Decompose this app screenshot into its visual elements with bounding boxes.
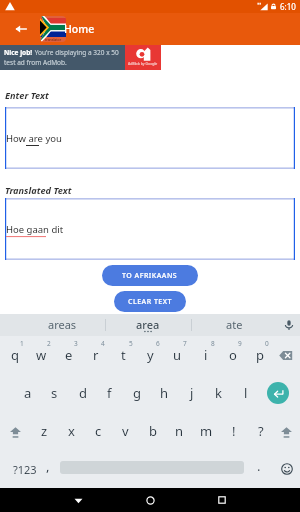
button[interactable]: w — [28, 336, 55, 374]
staticText: AdMob by Google — [128, 61, 158, 66]
staticText: q — [11, 346, 19, 364]
button[interactable]: n — [166, 412, 193, 450]
button[interactable]: CLEAR TEXT — [114, 291, 186, 312]
button[interactable]: k — [205, 374, 232, 412]
button[interactable]: ! — [220, 412, 247, 450]
button[interactable]: Enter — [267, 382, 289, 404]
staticText: e — [65, 346, 73, 364]
staticText: i — [204, 346, 208, 364]
staticText: CLEAR TEXT — [128, 297, 172, 307]
button[interactable]: e — [55, 336, 82, 374]
button[interactable]: Recent apps — [186, 488, 258, 512]
staticText: p — [256, 346, 264, 364]
button[interactable]: a — [14, 374, 41, 412]
staticText: 2 — [47, 339, 51, 348]
staticText: 7 — [183, 339, 187, 348]
button[interactable]: r — [82, 336, 109, 374]
button[interactable]: Home — [114, 488, 186, 512]
staticText: 3 — [74, 339, 78, 348]
button[interactable]: s — [41, 374, 68, 412]
staticText: j — [190, 384, 194, 402]
staticText: z — [41, 422, 48, 440]
staticText: h — [160, 384, 169, 402]
button[interactable]: m — [193, 412, 220, 450]
button[interactable]: Navigate up — [8, 13, 34, 45]
staticText: ! — [232, 422, 236, 440]
button[interactable]: y — [137, 336, 164, 374]
staticText: y — [147, 346, 154, 364]
staticText: 5 — [129, 339, 133, 348]
button[interactable]: v — [112, 412, 139, 450]
staticText: u — [173, 346, 182, 364]
staticText: 1 — [20, 339, 24, 348]
staticText: ? — [258, 422, 264, 440]
button[interactable]: Delete — [272, 336, 300, 374]
staticText: v — [122, 422, 129, 440]
button[interactable]: , — [36, 450, 60, 488]
staticText: 6:10 — [280, 1, 296, 12]
staticText: ?123 — [13, 462, 37, 477]
staticText: areas — [48, 317, 77, 332]
button[interactable]: u — [164, 336, 191, 374]
button[interactable]: Back — [42, 488, 114, 512]
staticText: area — [136, 317, 160, 332]
button[interactable]: l — [232, 374, 259, 412]
staticText: translator — [45, 37, 62, 42]
staticText: You're displaying a 320 x 50 — [33, 48, 119, 57]
button[interactable]: ate — [191, 314, 277, 336]
button[interactable]: x — [58, 412, 85, 450]
staticText: , — [46, 457, 50, 475]
staticText: b — [149, 422, 157, 440]
staticText: g — [133, 384, 141, 402]
staticText: s — [51, 384, 58, 402]
button[interactable]: h — [151, 374, 178, 412]
button[interactable]: Emoji — [274, 450, 300, 488]
staticText: o — [229, 346, 237, 364]
button[interactable]: d — [69, 374, 96, 412]
button[interactable]: z — [31, 412, 58, 450]
button[interactable]: g — [123, 374, 150, 412]
button[interactable]: q — [1, 336, 28, 374]
staticText: f — [107, 384, 112, 402]
staticText: 4 — [101, 339, 105, 348]
staticText: Enter Text — [5, 89, 49, 102]
staticText: r — [93, 346, 99, 364]
button[interactable]: ?123 — [0, 450, 50, 488]
button[interactable]: Voice input — [277, 314, 300, 336]
button[interactable]: area — [105, 314, 191, 336]
button[interactable]: c — [85, 412, 112, 450]
staticText: t — [121, 346, 126, 364]
staticText: n — [175, 422, 184, 440]
button[interactable]: Shift — [272, 412, 300, 450]
staticText: 0 — [265, 339, 269, 348]
button[interactable]: f — [96, 374, 123, 412]
staticText: ate — [226, 317, 243, 332]
button[interactable]: ? — [247, 412, 274, 450]
staticText: x — [68, 422, 75, 440]
staticText: 9 — [238, 339, 242, 348]
button[interactable]: p — [246, 336, 273, 374]
button[interactable]: Shift — [0, 412, 30, 450]
button[interactable]: . — [246, 450, 272, 488]
staticText: How are you — [6, 132, 62, 145]
button[interactable]: b — [139, 412, 166, 450]
staticText: TO AFRIKAANS — [122, 271, 178, 281]
staticText: w — [36, 346, 47, 364]
staticText: k — [215, 384, 222, 402]
staticText: Translated Text — [5, 184, 72, 197]
button[interactable]: Hoe gaan dit — [5, 198, 295, 260]
button[interactable]: j — [178, 374, 205, 412]
button[interactable]: AdMob by Google — [125, 45, 161, 70]
staticText: d — [79, 384, 87, 402]
staticText: a — [24, 384, 32, 402]
staticText: 6 — [156, 339, 160, 348]
button[interactable]: o — [219, 336, 246, 374]
button[interactable]: t — [110, 336, 137, 374]
button[interactable]: areas — [19, 314, 105, 336]
staticText: Home — [64, 22, 95, 36]
button[interactable]: i — [192, 336, 219, 374]
staticText: l — [244, 384, 248, 402]
button[interactable]: How are you — [5, 107, 295, 169]
button[interactable]: TO AFRIKAANS — [102, 265, 198, 286]
